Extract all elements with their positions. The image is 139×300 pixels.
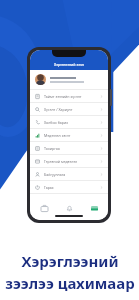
staticText: Хүсэлт / Хариулт — [44, 107, 100, 112]
staticText: Тохиргоо — [44, 146, 100, 151]
staticText: Гэрээний мэдээлэл — [44, 159, 100, 164]
button[interactable]: Гэрээний мэдээлэл — [30, 155, 108, 167]
button[interactable]: Cards — [89, 203, 99, 213]
button[interactable]: Гарах — [30, 181, 108, 193]
staticText: Хэрэглээний зээл — [54, 62, 84, 67]
staticText: зээлээ цахимаар — [5, 273, 135, 293]
staticText: Байгууллага — [44, 172, 100, 177]
button[interactable]: Хүсэлт / Хариулт — [30, 103, 108, 115]
button[interactable] — [30, 70, 108, 89]
staticText: Гарах — [44, 185, 100, 190]
button[interactable]: Notifications — [64, 203, 74, 213]
staticText: Холбоо барих — [44, 120, 100, 125]
button[interactable]: Тохиргоо — [30, 142, 108, 154]
button[interactable]: Холбоо барих — [30, 116, 108, 128]
button[interactable]: Wallet — [39, 203, 49, 213]
button[interactable]: Байгууллага — [30, 168, 108, 180]
staticText: Мэдээлэл хэсэг — [44, 133, 100, 138]
staticText: Таймт зээлийн хүсэлт — [44, 94, 100, 99]
button[interactable]: Таймт зээлийн хүсэлт — [30, 90, 108, 102]
staticText: Хэрэглээний — [21, 251, 119, 271]
button[interactable]: Мэдээлэл хэсэг — [30, 129, 108, 141]
